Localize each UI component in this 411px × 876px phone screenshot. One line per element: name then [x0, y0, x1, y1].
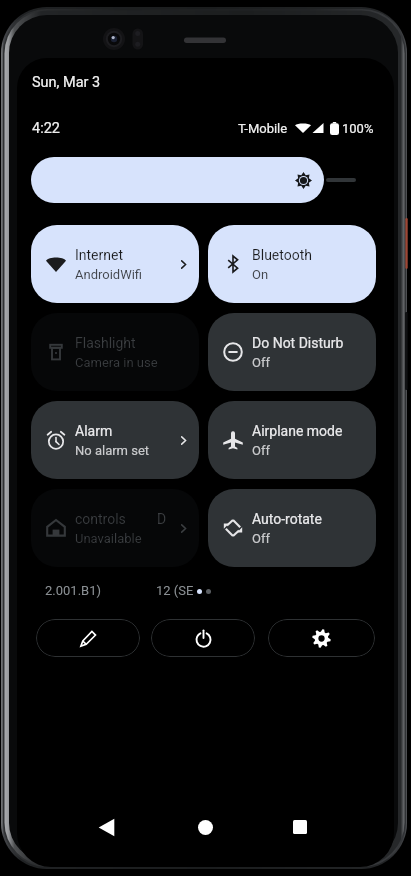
staticText: Sun, Mar 3 [32, 74, 101, 91]
staticText: 2.001.B1) [45, 583, 102, 598]
button[interactable]: Home [189, 811, 221, 843]
button[interactable]: Brightness [31, 157, 324, 203]
staticText: Auto-rotate [252, 511, 322, 527]
staticText: 100% [342, 121, 374, 136]
staticText: Alarm [75, 423, 113, 439]
staticText: T-Mobile [238, 121, 288, 136]
button[interactable]: Bluetooth [208, 225, 376, 303]
staticText: Airplane mode [252, 423, 343, 439]
staticText: Off [252, 355, 270, 370]
staticText: AndroidWifi [75, 267, 143, 282]
staticText: No alarm set [75, 443, 150, 458]
button[interactable]: Do Not Disturb [208, 313, 376, 391]
staticText: Bluetooth [252, 247, 312, 263]
button[interactable]: Flashlight [31, 313, 199, 391]
button[interactable]: Back [90, 811, 122, 843]
staticText: 4:22 [32, 120, 60, 137]
staticText: Unavailable [75, 531, 142, 546]
staticText: 12 (SE [156, 583, 194, 598]
staticText: Camera in use [75, 355, 158, 370]
staticText: Internet [75, 247, 124, 263]
staticText: On [252, 267, 269, 282]
button[interactable]: Alarm [31, 401, 199, 479]
staticText: controls D [75, 511, 167, 527]
staticText: Do Not Disturb [252, 335, 344, 351]
button[interactable]: Power [151, 619, 255, 657]
staticText: Off [252, 443, 270, 458]
button[interactable]: Airplane mode [208, 401, 376, 479]
button[interactable]: Settings [268, 619, 375, 657]
button[interactable]: Edit [36, 619, 140, 657]
button[interactable]: Recents [284, 811, 316, 843]
staticText: Flashlight [75, 335, 136, 351]
staticText: Off [252, 531, 270, 546]
button[interactable]: Auto-rotate [208, 489, 376, 567]
button[interactable]: Internet [31, 225, 199, 303]
button[interactable]: controls D [31, 489, 199, 567]
